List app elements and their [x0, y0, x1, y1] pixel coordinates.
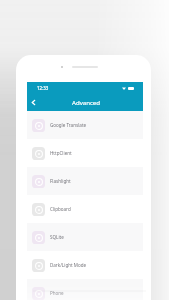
staticText: Google Translate [50, 122, 87, 128]
button[interactable]: Phone [27, 279, 143, 300]
button[interactable]: Google Translate [27, 111, 143, 139]
staticText: SQLite [50, 234, 64, 240]
button[interactable]: Back [26, 94, 40, 111]
staticText: Clipboard [50, 206, 71, 212]
staticText: Advanced [72, 98, 101, 106]
staticText: Phone [50, 290, 64, 296]
staticText: HttpClient [50, 150, 72, 156]
button[interactable]: SQLite [27, 223, 143, 251]
button[interactable]: Clipboard [27, 195, 143, 223]
button[interactable]: HttpClient [27, 139, 143, 167]
staticText: 12:33 [37, 85, 49, 91]
staticText: Dark/Light Mode [50, 262, 87, 268]
staticText: Flashlight [50, 178, 71, 184]
button[interactable]: Flashlight [27, 167, 143, 195]
button[interactable]: Dark/Light Mode [27, 251, 143, 279]
